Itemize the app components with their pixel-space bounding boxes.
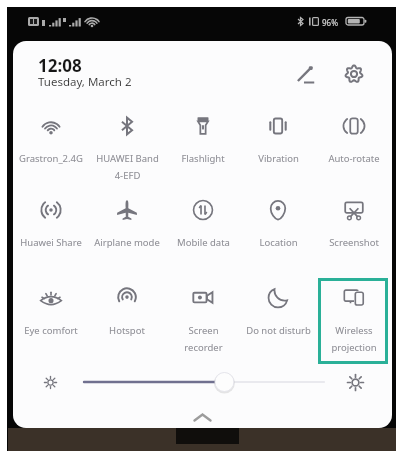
staticText: Grastron_2.4G <box>19 152 83 165</box>
staticText: Hotspot <box>109 324 145 337</box>
staticText: Airplane mode <box>94 236 160 249</box>
staticText: Do not disturb <box>246 324 311 337</box>
staticText: Wireless projection <box>331 324 377 353</box>
button[interactable]: Location <box>240 193 316 273</box>
button[interactable]: Grastron_2.4G <box>13 109 89 189</box>
button[interactable]: Do not disturb <box>240 281 316 361</box>
staticText: 12:08 <box>38 54 82 77</box>
button[interactable]: Vibration <box>240 109 316 189</box>
button[interactable]: Settings <box>336 56 372 92</box>
button[interactable]: HUAWEI Band 4-EFD <box>89 109 165 189</box>
button[interactable]: Huawei Share <box>13 193 89 273</box>
staticText: Screenshot <box>329 236 379 249</box>
staticText: Auto-rotate <box>328 152 380 165</box>
button[interactable]: Auto-rotate <box>316 109 392 189</box>
button[interactable]: Mobile data <box>165 193 241 273</box>
button[interactable]: Hotspot <box>89 281 165 361</box>
button[interactable]: Flashlight <box>165 109 241 189</box>
button[interactable]: Wireless projection <box>316 281 392 361</box>
button[interactable]: Screenshot <box>316 193 392 273</box>
button[interactable]: Airplane mode <box>89 193 165 273</box>
button[interactable]: Screen recorder <box>165 281 241 361</box>
staticText: Screen recorder <box>184 324 223 353</box>
button[interactable]: Decrease brightness <box>40 372 60 392</box>
staticText: Location <box>259 236 298 249</box>
staticText: Tuesday, March 2 <box>38 74 132 90</box>
staticText: HUAWEI Band 4-EFD <box>96 152 159 181</box>
staticText: Mobile data <box>177 236 230 249</box>
staticText: 96% <box>322 17 338 28</box>
button[interactable]: Increase brightness <box>345 372 365 392</box>
staticText: Flashlight <box>181 152 225 165</box>
button[interactable]: Edit quick settings <box>287 56 323 92</box>
staticText: Vibration <box>258 152 299 165</box>
staticText: Huawei Share <box>20 236 82 249</box>
button[interactable]: Eye comfort <box>13 281 89 361</box>
button[interactable]: Collapse panel <box>185 407 220 427</box>
button[interactable]: Brightness slider <box>79 367 329 397</box>
staticText: Eye comfort <box>24 324 78 337</box>
